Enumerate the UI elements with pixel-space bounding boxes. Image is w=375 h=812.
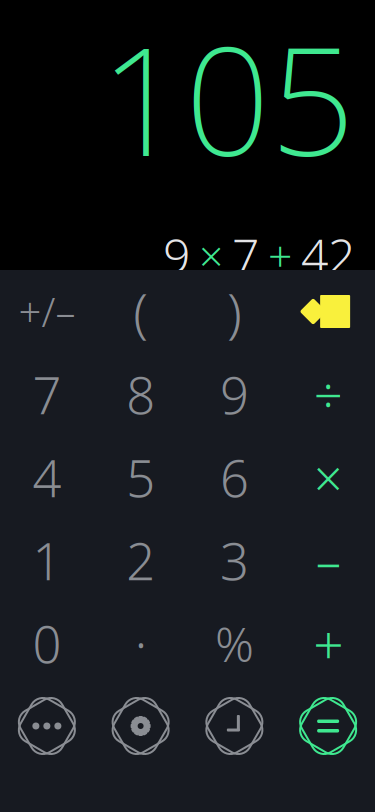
staticText: ( — [133, 276, 148, 347]
button[interactable]: Backspace — [281, 270, 375, 353]
staticText: + — [268, 227, 292, 283]
button[interactable]: History — [187, 685, 281, 767]
staticText: 8 — [126, 361, 155, 428]
staticText: 5 — [126, 444, 155, 511]
button[interactable]: Close parenthesis — [187, 270, 281, 353]
button[interactable]: 7 — [0, 353, 94, 436]
button[interactable]: Multiply — [281, 436, 375, 519]
staticText: 42 — [301, 223, 355, 287]
staticText: 3 — [220, 527, 249, 594]
staticText: +/– — [18, 285, 75, 338]
staticText: 105 — [100, 0, 355, 197]
staticText: 6 — [220, 444, 249, 511]
button[interactable]: Percent — [187, 602, 281, 685]
staticText: 4 — [32, 444, 61, 511]
button[interactable]: 3 — [187, 519, 281, 602]
button[interactable]: Decimal point — [94, 602, 188, 685]
staticText: % — [215, 612, 254, 675]
button[interactable]: Minus — [281, 519, 375, 602]
button[interactable]: 4 — [0, 436, 94, 519]
button[interactable]: More — [0, 685, 94, 767]
staticText: 7 — [32, 361, 61, 428]
staticText: ) — [227, 276, 242, 347]
button[interactable]: 0 — [0, 602, 94, 685]
staticText: + — [313, 608, 343, 679]
staticText: 9 — [220, 361, 249, 428]
staticText: 2 — [126, 527, 155, 594]
button[interactable]: Plus — [281, 602, 375, 685]
button[interactable]: 6 — [187, 436, 281, 519]
button[interactable]: Divide — [281, 353, 375, 436]
staticText: 7 — [232, 223, 259, 287]
button[interactable]: Open parenthesis — [94, 270, 188, 353]
staticText: 1 — [32, 527, 61, 594]
button[interactable]: 2 — [94, 519, 188, 602]
staticText: × — [314, 444, 343, 511]
staticText: ÷ — [314, 361, 343, 428]
button[interactable]: 8 — [94, 353, 188, 436]
staticText: 0 — [32, 610, 61, 677]
staticText: · — [135, 610, 147, 677]
staticText: – — [316, 527, 341, 594]
button[interactable]: 9 — [187, 353, 281, 436]
button[interactable]: 5 — [94, 436, 188, 519]
button[interactable]: Equals — [281, 685, 375, 767]
button[interactable]: 1 — [0, 519, 94, 602]
staticText: × — [199, 227, 223, 283]
staticText: 9 — [163, 223, 190, 287]
button[interactable]: Settings — [94, 685, 188, 767]
button[interactable]: Plus minus — [0, 270, 94, 353]
